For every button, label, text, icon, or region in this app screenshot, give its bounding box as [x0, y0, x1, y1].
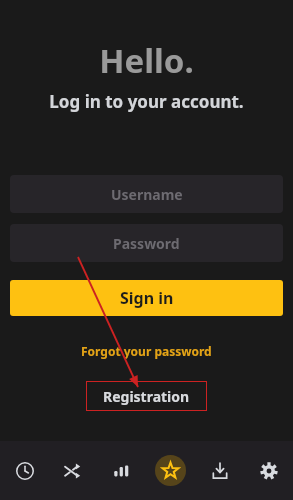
- button[interactable]: Favorites: [146, 441, 195, 500]
- staticText: Forgot your password: [81, 343, 212, 359]
- button[interactable]: Registration: [86, 381, 207, 411]
- button[interactable]: Statistics: [97, 441, 146, 500]
- button[interactable]: Sign in: [10, 280, 283, 316]
- button[interactable]: Settings: [244, 441, 293, 500]
- button[interactable]: Password: [10, 224, 283, 262]
- staticText: Password: [113, 234, 180, 253]
- button[interactable]: Downloads: [195, 441, 244, 500]
- staticText: Log in to your account.: [0, 90, 293, 113]
- button[interactable]: Forgot your password: [0, 343, 293, 359]
- button[interactable]: Username: [10, 175, 283, 213]
- staticText: Username: [111, 185, 183, 204]
- staticText: Sign in: [120, 287, 174, 309]
- staticText: Registration: [103, 387, 190, 406]
- button[interactable]: Recent: [0, 441, 48, 500]
- staticText: Hello.: [0, 38, 293, 83]
- button[interactable]: Shuffle: [48, 441, 97, 500]
